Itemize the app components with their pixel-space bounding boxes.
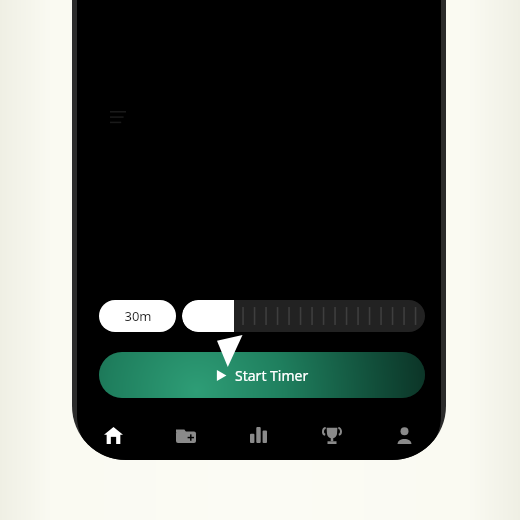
button[interactable]: Home [77, 415, 149, 455]
staticText: 30m [124, 307, 152, 325]
button[interactable]: Achievements [295, 415, 368, 455]
button[interactable]: Start Timer [99, 352, 425, 398]
button[interactable]: 30m [99, 300, 176, 332]
staticText: Start Timer [235, 366, 309, 385]
button[interactable]: Workouts [149, 415, 222, 455]
button[interactable]: Menu [106, 107, 130, 129]
button[interactable]: Duration slider [182, 300, 425, 332]
button[interactable]: Profile [368, 415, 441, 455]
button[interactable]: Stats [222, 415, 295, 455]
